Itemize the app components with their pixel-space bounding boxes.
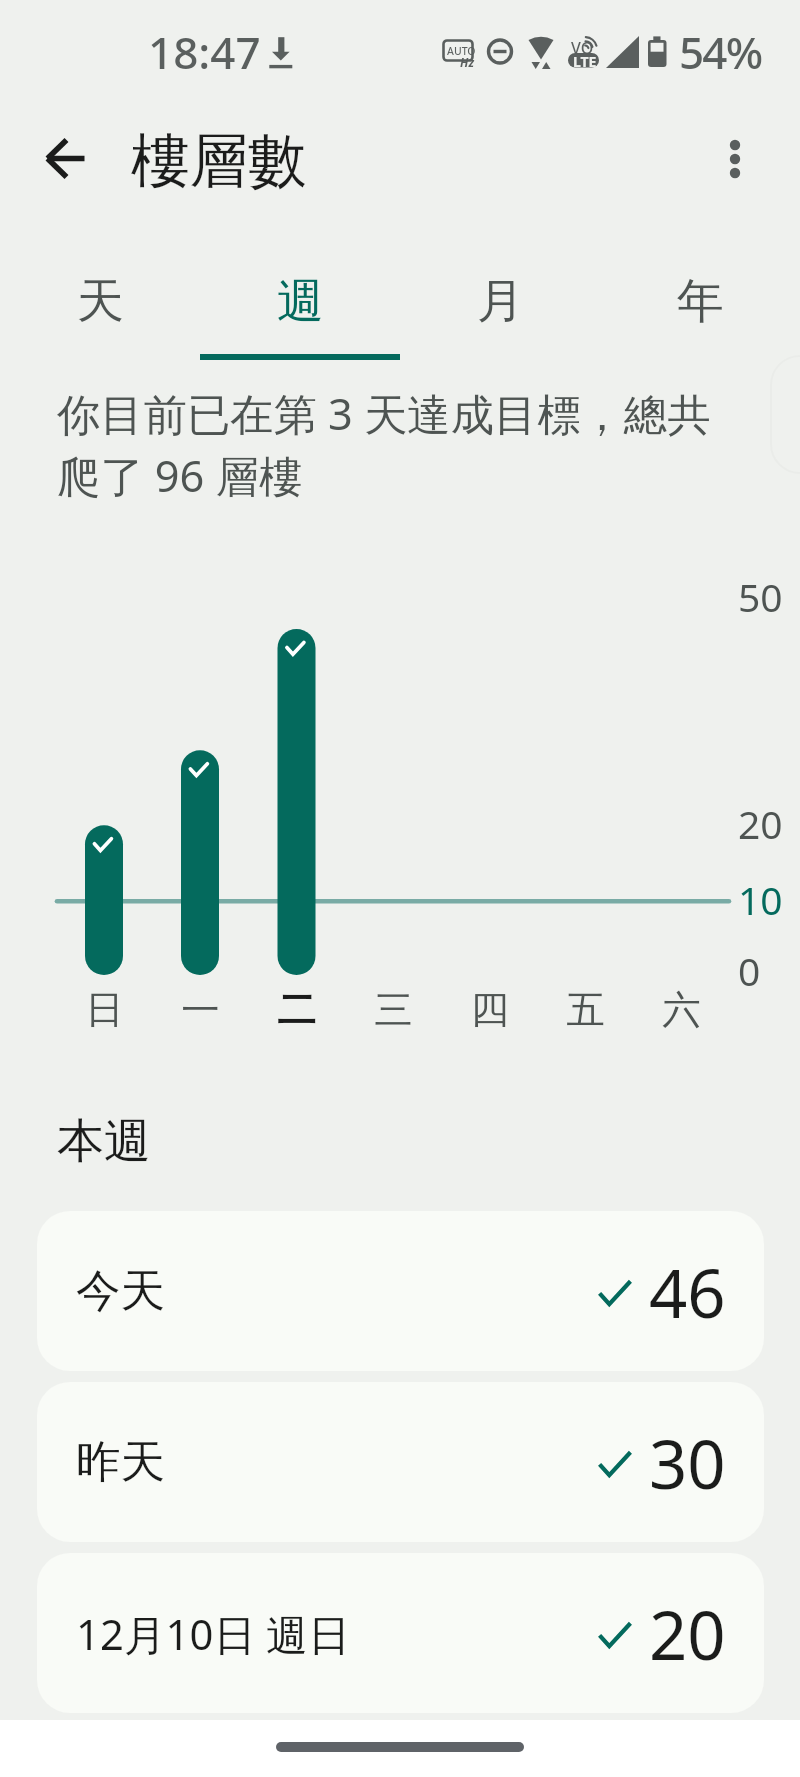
staticText: AUTO <box>447 44 476 58</box>
staticText: 54% <box>679 22 762 82</box>
button[interactable]: 年 <box>600 250 800 362</box>
staticText: 10 <box>738 873 783 926</box>
staticText: 0 <box>738 944 761 997</box>
staticText: 你目前已在第 3 天達成目標，總共爬了 96 層樓 <box>57 384 747 505</box>
button[interactable]: More options <box>705 129 765 189</box>
button[interactable]: 12月10日 週日 <box>37 1553 764 1713</box>
button[interactable]: Back <box>16 126 112 186</box>
staticText: 12月10日 週日 <box>76 1605 350 1662</box>
button[interactable]: 月 <box>400 250 600 362</box>
staticText: 20 <box>649 1588 726 1679</box>
staticText: 本週 <box>57 1112 151 1171</box>
staticText: Hz <box>460 54 475 70</box>
staticText: 月 <box>477 272 524 331</box>
button[interactable]: 今天 <box>37 1211 764 1371</box>
staticText: LTE <box>573 52 597 71</box>
staticText: 日 <box>85 986 124 1035</box>
button[interactable]: 週 <box>200 250 400 362</box>
staticText: 18:47 <box>148 22 261 82</box>
staticText: 46 <box>649 1246 726 1337</box>
staticText: 年 <box>677 272 724 331</box>
staticText: 二 <box>277 986 316 1035</box>
staticText: 一 <box>181 986 220 1035</box>
staticText: 30 <box>649 1417 726 1508</box>
staticText: 五 <box>566 986 605 1035</box>
staticText: 昨天 <box>76 1434 165 1490</box>
staticText: 天 <box>77 272 124 331</box>
staticText: 今天 <box>76 1263 165 1319</box>
button[interactable]: 昨天 <box>37 1382 764 1542</box>
staticText: 四 <box>470 986 509 1035</box>
staticText: 20 <box>738 797 783 850</box>
staticText: 六 <box>662 986 701 1035</box>
staticText: 週 <box>277 272 324 331</box>
staticText: 樓層數 <box>131 125 307 199</box>
button[interactable]: 天 <box>0 250 200 362</box>
staticText: 三 <box>374 986 413 1035</box>
staticText: VO <box>571 37 594 59</box>
staticText: 50 <box>738 570 783 623</box>
